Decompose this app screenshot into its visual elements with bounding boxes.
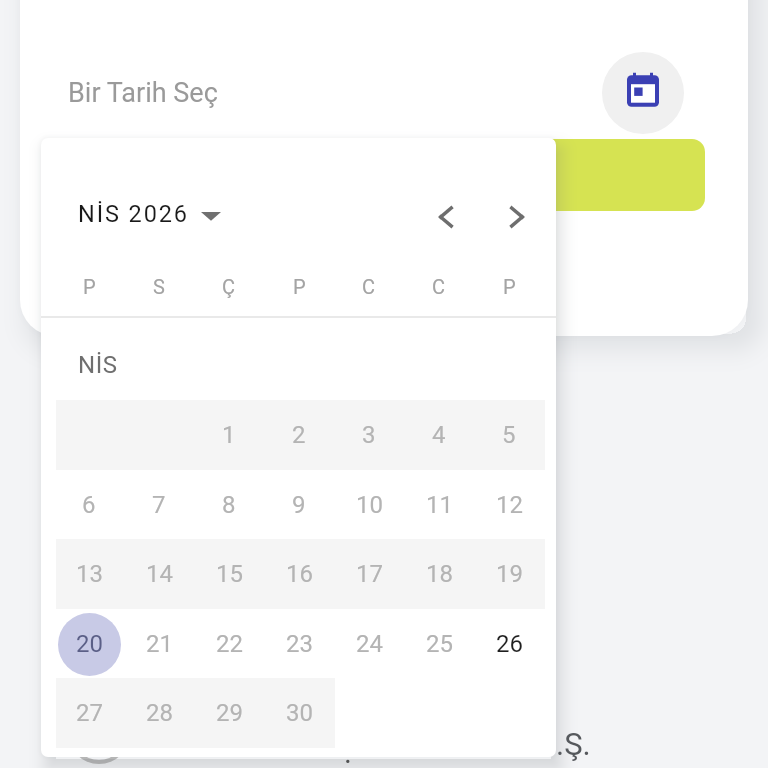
button[interactable]: 20 [54, 609, 124, 679]
staticText: 27 [76, 699, 103, 727]
button[interactable]: 11 [404, 470, 474, 540]
staticText: 1 [222, 421, 236, 449]
button[interactable] [530, 139, 705, 211]
staticText: 11 [426, 491, 453, 519]
staticText: 22 [216, 630, 243, 658]
button[interactable]: 30 [264, 678, 334, 748]
staticText: 17 [356, 560, 383, 588]
button[interactable]: 14 [124, 539, 194, 609]
staticText: 4 [432, 421, 446, 449]
staticText: 7 [152, 491, 166, 519]
button[interactable]: 9 [264, 470, 334, 540]
button[interactable]: 13 [54, 539, 124, 609]
button[interactable]: 6 [54, 470, 124, 540]
staticText: NİS [78, 351, 118, 379]
button[interactable]: Sonraki ay [485, 185, 549, 249]
button[interactable]: 24 [334, 609, 404, 679]
button[interactable]: 19 [474, 539, 544, 609]
button[interactable]: 29 [194, 678, 264, 748]
staticText: 15 [216, 560, 243, 588]
button[interactable]: 2 [264, 400, 334, 470]
staticText: 26 [496, 630, 523, 658]
staticText: 25 [426, 630, 453, 658]
staticText: 9 [292, 491, 306, 519]
button[interactable]: 16 [264, 539, 334, 609]
button[interactable]: 5 [474, 400, 544, 470]
staticText: S [153, 275, 165, 298]
button[interactable]: 28 [124, 678, 194, 748]
staticText: 29 [216, 699, 243, 727]
staticText: NİS 2026 [78, 200, 189, 228]
staticText: 24 [356, 630, 383, 658]
staticText: 5 [502, 421, 516, 449]
staticText: C [432, 275, 446, 298]
staticText: 3 [362, 421, 376, 449]
button[interactable]: 26 [474, 609, 544, 679]
button[interactable]: 3 [334, 400, 404, 470]
button[interactable]: 27 [54, 678, 124, 748]
staticText: C [362, 275, 376, 298]
button[interactable]: 10 [334, 470, 404, 540]
staticText: 18 [426, 560, 453, 588]
button[interactable]: 23 [264, 609, 334, 679]
staticText: . [344, 735, 352, 768]
staticText: P [503, 275, 516, 298]
button[interactable]: 8 [194, 470, 264, 540]
staticText: 10 [356, 491, 383, 519]
staticText: 30 [286, 699, 313, 727]
staticText: 6 [82, 491, 96, 519]
staticText: P [83, 275, 96, 298]
button[interactable]: 25 [404, 609, 474, 679]
staticText: 13 [76, 560, 103, 588]
staticText: 23 [286, 630, 313, 658]
staticText: .Ş. [556, 726, 591, 762]
button[interactable]: 21 [124, 609, 194, 679]
button[interactable]: 17 [334, 539, 404, 609]
staticText: 21 [146, 630, 173, 658]
button[interactable]: 12 [474, 470, 544, 540]
button[interactable]: 18 [404, 539, 474, 609]
button[interactable]: 7 [124, 470, 194, 540]
button[interactable]: Önceki ay [414, 185, 478, 249]
button[interactable]: 22 [194, 609, 264, 679]
staticText: 8 [222, 491, 236, 519]
button[interactable]: 1 [194, 400, 264, 470]
staticText: Ç [222, 275, 236, 298]
staticText: 20 [76, 630, 103, 658]
button[interactable]: Yıl seç [192, 197, 230, 235]
button[interactable]: Takvimi aç [602, 52, 684, 134]
staticText: 12 [496, 491, 523, 519]
staticText: 2 [292, 421, 306, 449]
staticText: P [293, 275, 306, 298]
button[interactable]: 4 [404, 400, 474, 470]
staticText: 16 [286, 560, 313, 588]
staticText: 14 [146, 560, 173, 588]
button[interactable]: 15 [194, 539, 264, 609]
staticText: 28 [146, 699, 173, 727]
staticText: Bir Tarih Seç [68, 77, 218, 109]
staticText: 19 [496, 560, 523, 588]
